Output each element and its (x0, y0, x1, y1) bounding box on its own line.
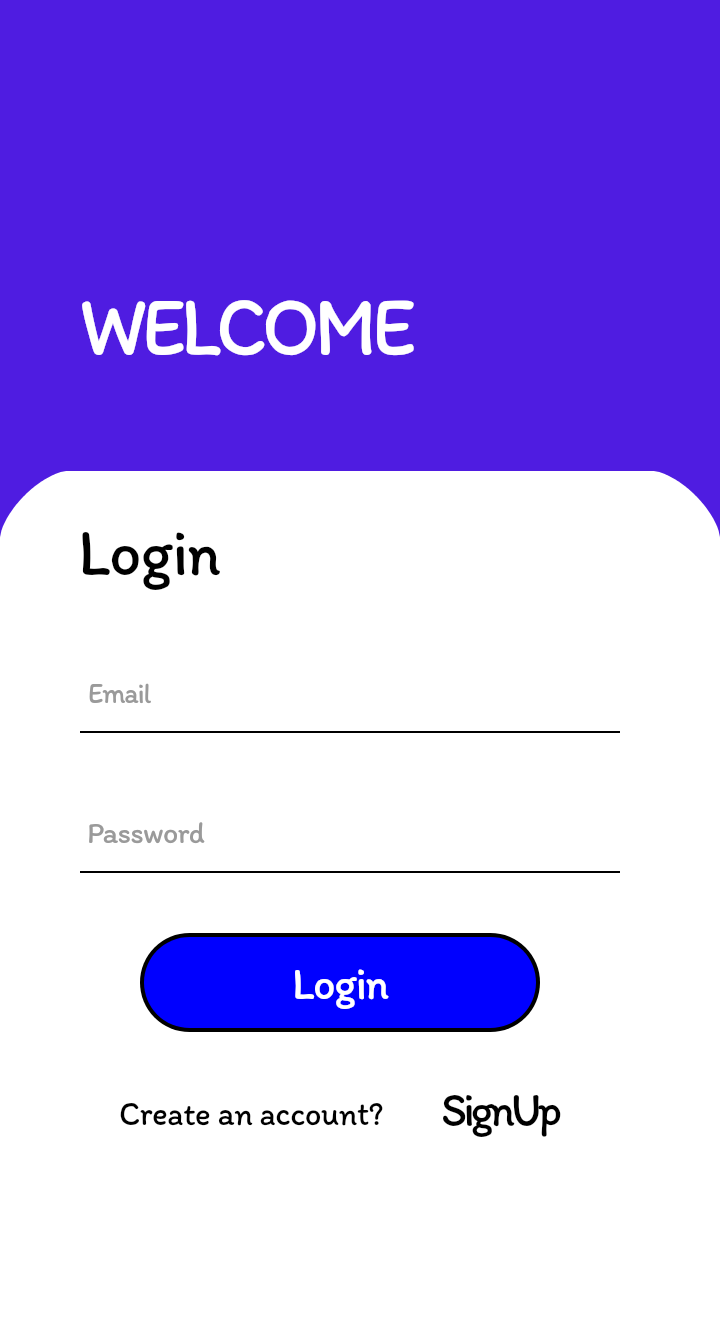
staticText: Create an account? (119, 1093, 383, 1133)
button[interactable]: Email (80, 660, 620, 733)
staticText: Login (292, 955, 388, 1010)
staticText: SignUp (441, 1080, 559, 1138)
button[interactable]: Login (144, 937, 536, 1028)
button[interactable]: Password (80, 798, 620, 873)
button[interactable]: SignUp (441, 1080, 564, 1138)
staticText: Login (78, 512, 221, 591)
staticText: WELCOME (79, 274, 411, 377)
staticText: Password (87, 814, 205, 851)
staticText: Email (88, 676, 150, 710)
